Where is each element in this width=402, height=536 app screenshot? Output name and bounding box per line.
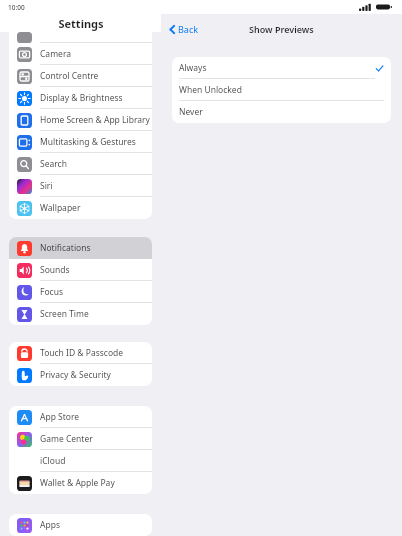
button[interactable]: Back — [167, 21, 201, 37]
staticText: Privacy & Security — [40, 369, 111, 381]
button[interactable]: Siri — [9, 175, 152, 197]
staticText: Notifications — [40, 242, 91, 254]
button[interactable]: Camera — [9, 43, 152, 65]
button[interactable]: Control Centre — [9, 65, 152, 87]
staticText: Wallpaper — [40, 202, 81, 214]
staticText: Settings — [58, 16, 104, 31]
button[interactable]: Touch ID & Passcode — [9, 342, 152, 364]
button[interactable] — [9, 32, 152, 43]
staticText: Home Screen & App Library — [40, 114, 150, 126]
staticText: Sounds — [40, 264, 70, 276]
staticText: Control Centre — [40, 70, 99, 82]
staticText: Always — [179, 62, 207, 74]
button[interactable]: Focus — [9, 281, 152, 303]
staticText: Focus — [40, 286, 63, 298]
button[interactable]: Wallpaper — [9, 197, 152, 219]
button[interactable]: App Store — [9, 406, 152, 428]
button[interactable]: Always — [172, 57, 391, 79]
staticText: Game Center — [40, 433, 93, 445]
button[interactable]: Sounds — [9, 259, 152, 281]
button[interactable]: Notifications — [9, 237, 152, 259]
staticText: App Store — [40, 411, 80, 423]
staticText: iCloud — [40, 455, 66, 467]
staticText: Show Previews — [249, 23, 314, 35]
staticText: Never — [179, 106, 203, 118]
button[interactable]: iCloud — [9, 450, 152, 472]
button[interactable]: Game Center — [9, 428, 152, 450]
staticText: 10:00 — [8, 3, 25, 12]
button[interactable]: Wallet & Apple Pay — [9, 472, 152, 494]
staticText: Touch ID & Passcode — [40, 347, 124, 359]
button[interactable]: Privacy & Security — [9, 364, 152, 386]
button[interactable]: Multitasking & Gestures — [9, 131, 152, 153]
staticText: Siri — [40, 180, 53, 192]
staticText: Display & Brightness — [40, 92, 123, 104]
staticText: When Unlocked — [179, 84, 242, 96]
staticText: Camera — [40, 48, 71, 60]
button[interactable]: Home Screen & App Library — [9, 109, 152, 131]
button[interactable]: Display & Brightness — [9, 87, 152, 109]
staticText: Search — [40, 158, 67, 170]
staticText: Screen Time — [40, 308, 89, 320]
staticText: Apps — [40, 519, 60, 531]
staticText: Multitasking & Gestures — [40, 136, 136, 148]
button[interactable]: Apps — [9, 514, 152, 536]
button[interactable]: When Unlocked — [172, 79, 391, 101]
staticText: Wallet & Apple Pay — [40, 477, 115, 489]
button[interactable]: Screen Time — [9, 303, 152, 325]
button[interactable]: Search — [9, 153, 152, 175]
staticText: Back — [178, 23, 199, 35]
button[interactable]: Never — [172, 101, 391, 123]
